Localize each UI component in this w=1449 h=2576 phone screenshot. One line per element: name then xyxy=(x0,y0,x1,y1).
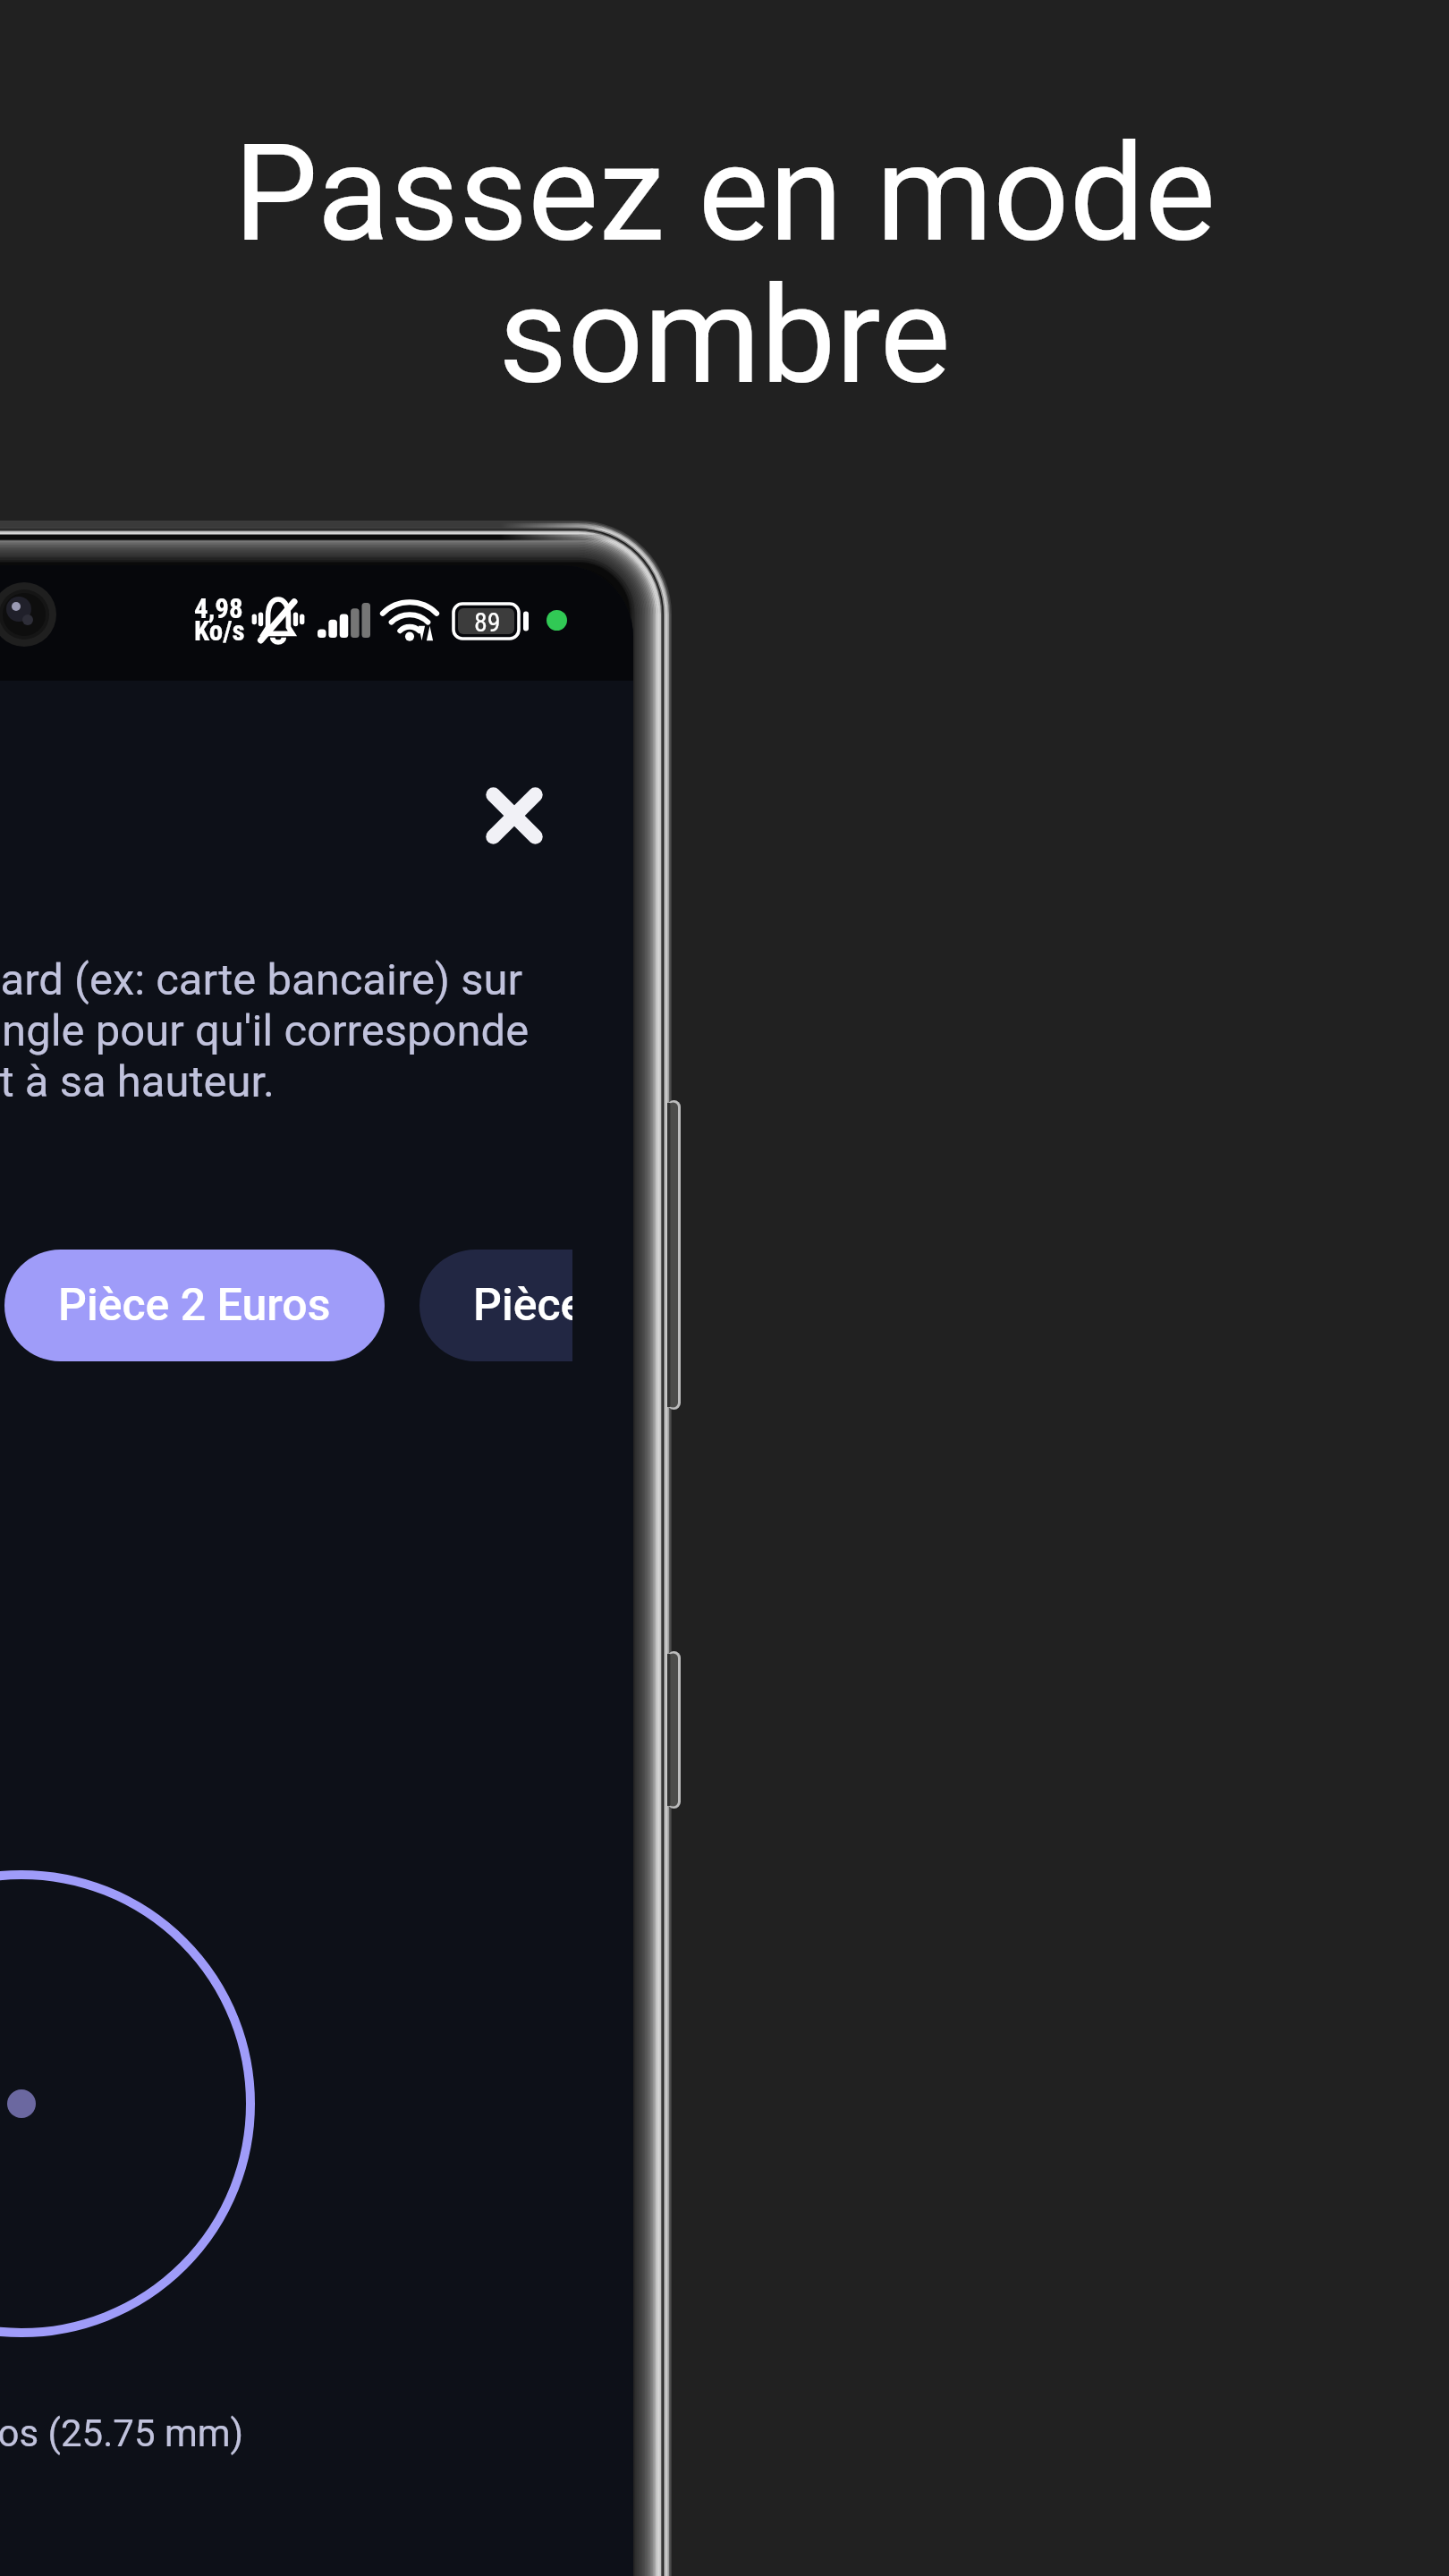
staticText: exactement à sa largeur et à sa hauteur. xyxy=(0,1056,275,1107)
staticText: Objet de référence : Pièce 2 Euros (25.7… xyxy=(0,2411,244,2455)
staticText: 4,98 Ko/s xyxy=(194,592,245,647)
staticText: Pièce 2 Euros xyxy=(58,1279,331,1332)
button[interactable]: Pièce 1 Euro xyxy=(419,1250,572,1361)
staticText: Pièce 1 Euro xyxy=(473,1279,572,1332)
staticText: l'écran et déplacez l'angle pour qu'il c… xyxy=(0,1005,530,1056)
staticText: Posez un objet standard (ex: carte banca… xyxy=(0,954,523,1005)
button[interactable]: Pièce 2 Euros xyxy=(4,1250,385,1361)
staticText: Passez en mode sombre xyxy=(0,115,1449,414)
button[interactable]: Fermer xyxy=(461,762,568,869)
staticText: 89 xyxy=(474,606,501,638)
